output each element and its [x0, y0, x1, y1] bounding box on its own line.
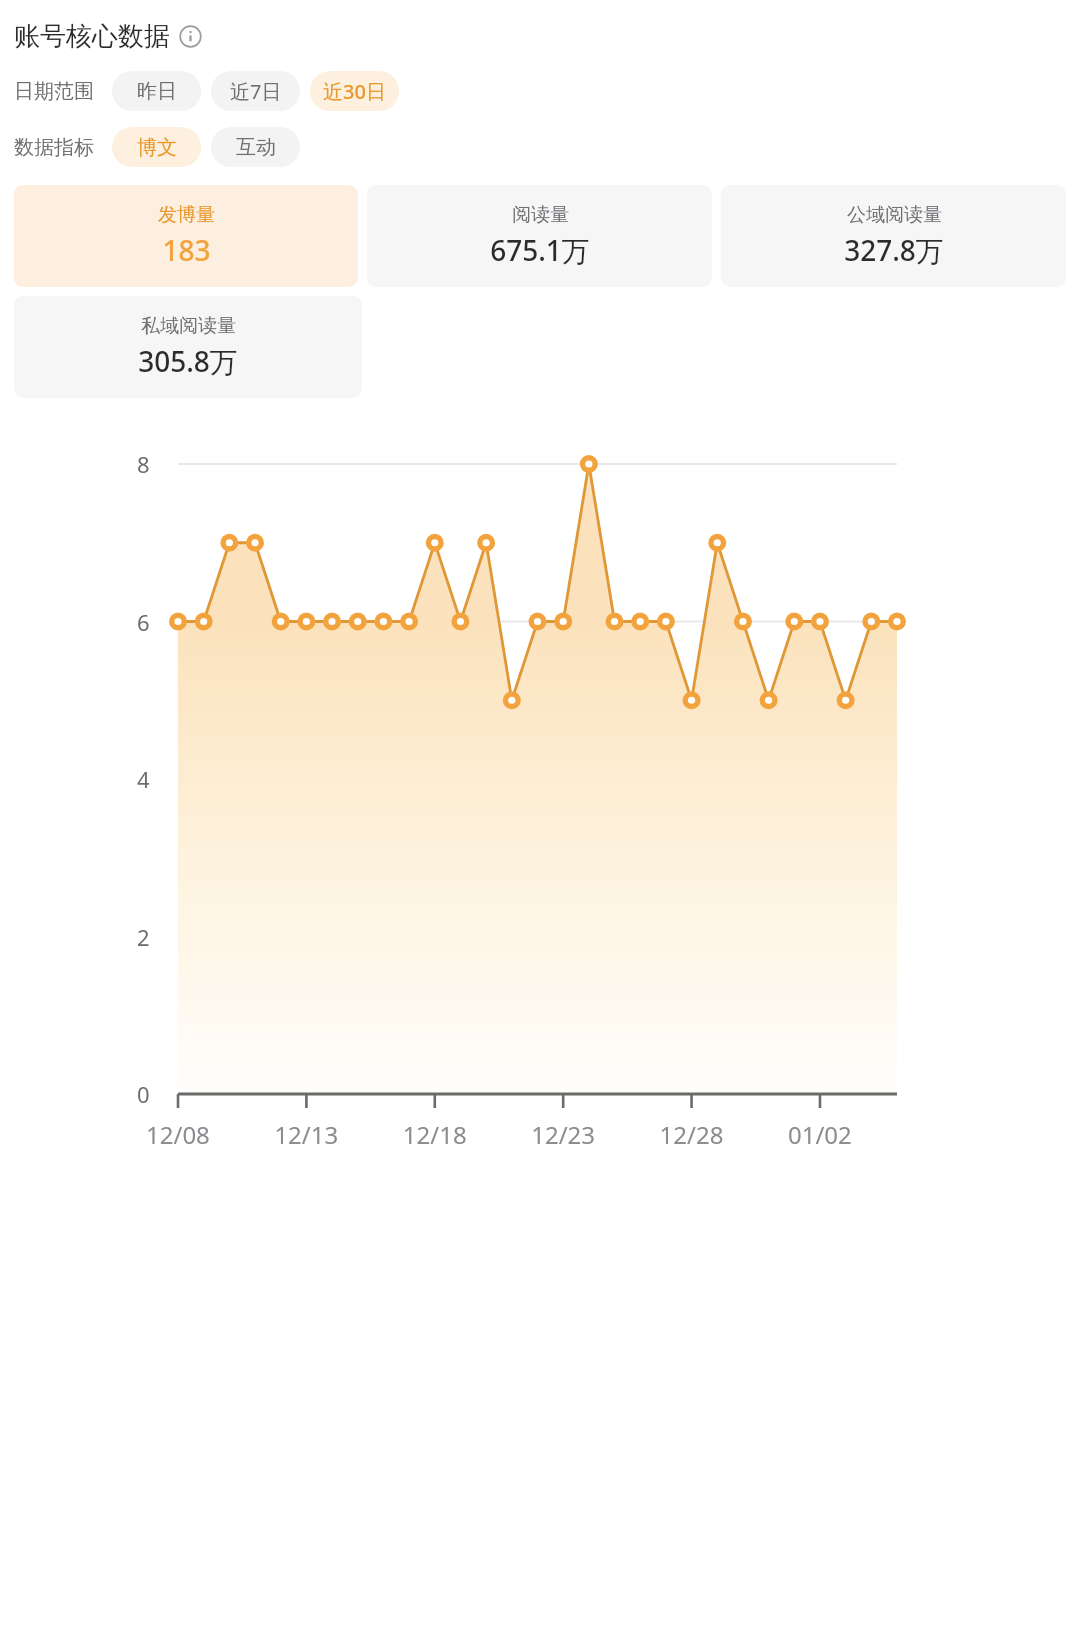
staticText: 昨日	[137, 79, 177, 104]
staticText: 博文	[137, 135, 177, 160]
staticText: 阅读量	[512, 203, 569, 227]
staticText: 327.8万	[844, 231, 944, 269]
staticText: 近7日	[230, 78, 282, 105]
staticText: 近30日	[323, 78, 386, 105]
button[interactable]: 阅读量	[367, 185, 712, 287]
staticText: 公域阅读量	[847, 203, 942, 227]
staticText: 账号核心数据	[14, 20, 170, 53]
button[interactable]: 数据说明	[179, 25, 202, 48]
staticText: 305.8万	[138, 342, 238, 380]
staticText: 数据指标	[14, 135, 94, 160]
staticText: 发博量	[158, 203, 215, 227]
staticText: 互动	[236, 135, 276, 160]
button[interactable]: 近30日	[310, 71, 399, 111]
button[interactable]: 博文	[112, 127, 201, 167]
button[interactable]: 私域阅读量	[14, 296, 362, 398]
button[interactable]: 公域阅读量	[721, 185, 1066, 287]
button[interactable]: 互动	[211, 127, 300, 167]
button[interactable]: 近7日	[211, 71, 300, 111]
staticText: 183	[162, 231, 211, 269]
staticText: 日期范围	[14, 79, 94, 104]
staticText: 675.1万	[490, 231, 590, 269]
staticText: 私域阅读量	[141, 314, 236, 338]
button[interactable]: 发博量	[14, 185, 358, 287]
button[interactable]: 昨日	[112, 71, 201, 111]
